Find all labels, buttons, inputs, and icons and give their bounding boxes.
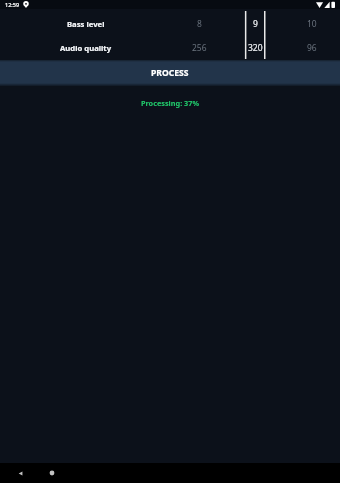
staticText: PROCESS [151,67,189,79]
staticText: Audio quality [60,43,112,53]
button[interactable]: Bass level [0,12,340,36]
staticText: Processing: 37% [0,98,340,108]
staticText: 9 [253,18,258,30]
staticText: 10 [307,18,317,30]
button[interactable]: Back [12,463,28,483]
staticText: 320 [248,42,263,54]
staticText: 12:59 [5,1,20,8]
staticText: 8 [197,18,202,30]
staticText: 96 [307,42,317,54]
button[interactable]: Audio quality [0,36,340,60]
button[interactable]: PROCESS [0,60,340,86]
staticText: 256 [192,42,207,54]
staticText: Bass level [67,19,105,29]
button[interactable]: Home [44,463,60,483]
